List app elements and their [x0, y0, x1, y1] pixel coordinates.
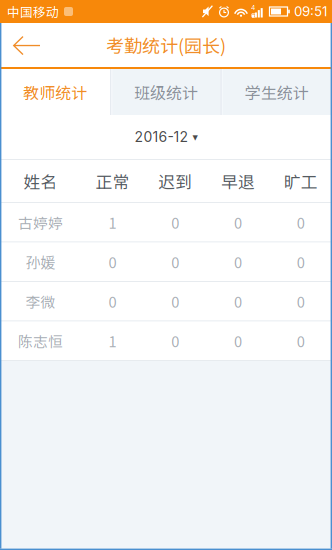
- staticText: 4G: [251, 3, 256, 19]
- staticText: 0: [234, 291, 242, 312]
- staticText: 1: [108, 212, 116, 233]
- staticText: 古婷婷: [18, 212, 63, 233]
- staticText: 0: [297, 291, 305, 312]
- staticText: 0: [297, 251, 305, 272]
- staticText: 0: [297, 212, 305, 233]
- staticText: 正常: [95, 169, 129, 193]
- button[interactable]: Back: [0, 23, 51, 67]
- staticText: 0: [108, 291, 116, 312]
- staticText: 0: [234, 251, 242, 272]
- staticText: 迟到: [158, 169, 192, 193]
- staticText: 0: [171, 330, 179, 351]
- staticText: 0: [234, 330, 242, 351]
- staticText: 0: [171, 251, 179, 272]
- staticText: 09:51: [294, 3, 327, 19]
- staticText: 早退: [221, 169, 255, 193]
- button[interactable]: 2016-12: [0, 115, 332, 159]
- staticText: 0: [297, 330, 305, 351]
- staticText: 中国移动: [7, 2, 59, 21]
- button[interactable]: 学生统计: [221, 69, 332, 115]
- staticText: 学生统计: [245, 80, 309, 104]
- staticText: 李微: [25, 291, 55, 312]
- button[interactable]: 班级统计: [111, 69, 221, 115]
- staticText: 考勤统计(园长): [106, 32, 226, 58]
- staticText: 0: [171, 212, 179, 233]
- staticText: 0: [234, 212, 242, 233]
- staticText: ▾: [192, 131, 197, 143]
- button[interactable]: 教师统计: [0, 69, 111, 115]
- staticText: 陈志恒: [18, 330, 63, 351]
- staticText: 教师统计: [23, 80, 87, 104]
- staticText: 2016-12: [134, 128, 188, 145]
- staticText: 1: [108, 330, 116, 351]
- staticText: 姓名: [23, 169, 57, 193]
- staticText: 0: [108, 251, 116, 272]
- staticText: 0: [171, 291, 179, 312]
- staticText: 班级统计: [134, 80, 198, 104]
- staticText: 孙媛: [25, 251, 55, 272]
- staticText: 旷工: [284, 169, 318, 193]
